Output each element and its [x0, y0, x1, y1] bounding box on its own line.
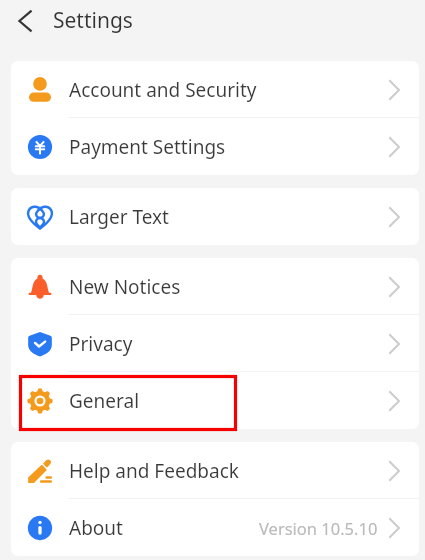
- button[interactable]: Privacy: [11, 315, 419, 372]
- staticText: General: [69, 388, 140, 414]
- button[interactable]: About: [11, 499, 419, 556]
- staticText: Larger Text: [69, 204, 169, 230]
- staticText: New Notices: [69, 274, 181, 300]
- button[interactable]: Account and Security: [11, 61, 419, 118]
- button[interactable]: Larger Text: [11, 188, 419, 245]
- staticText: Version 10.5.10: [259, 517, 378, 539]
- button[interactable]: New Notices: [11, 258, 419, 315]
- button[interactable]: General: [11, 372, 419, 429]
- staticText: Settings: [53, 6, 133, 35]
- button[interactable]: Help and Feedback: [11, 442, 419, 499]
- button[interactable]: Back: [0, 0, 49, 41]
- staticText: Payment Settings: [69, 134, 226, 160]
- button[interactable]: Payment Settings: [11, 118, 419, 175]
- staticText: About: [69, 515, 123, 541]
- staticText: Privacy: [69, 331, 133, 357]
- staticText: Account and Security: [69, 77, 257, 103]
- staticText: Help and Feedback: [69, 458, 239, 484]
